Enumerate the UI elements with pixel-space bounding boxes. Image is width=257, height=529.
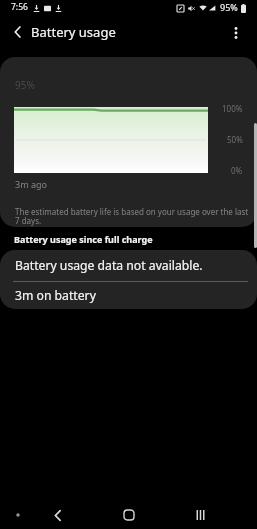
button[interactable]: 3m on battery [0,282,257,309]
staticText: 50% [227,134,243,145]
staticText: 95% [15,78,35,92]
button[interactable]: Home [117,503,141,527]
staticText: Battery usage data not available. [15,257,203,274]
staticText: 3m ago [15,178,47,190]
button[interactable]: More options [223,19,249,45]
button[interactable]: Navigate up [4,19,30,45]
button[interactable]: Notification dot [10,507,25,522]
staticText: 7:56 [11,1,28,13]
button[interactable]: Back [45,503,69,527]
staticText: 100% [222,103,243,114]
staticText: 0% [231,165,243,176]
staticText: Battery usage since full charge [14,233,153,245]
button[interactable]: Battery usage data not available. [0,250,257,281]
button[interactable]: Recent apps [188,503,212,527]
staticText: 3m on battery [15,287,96,304]
staticText: 95% [220,1,238,13]
staticText: The estimated battery life is based on y… [15,206,249,227]
staticText: Battery usage [31,23,116,41]
